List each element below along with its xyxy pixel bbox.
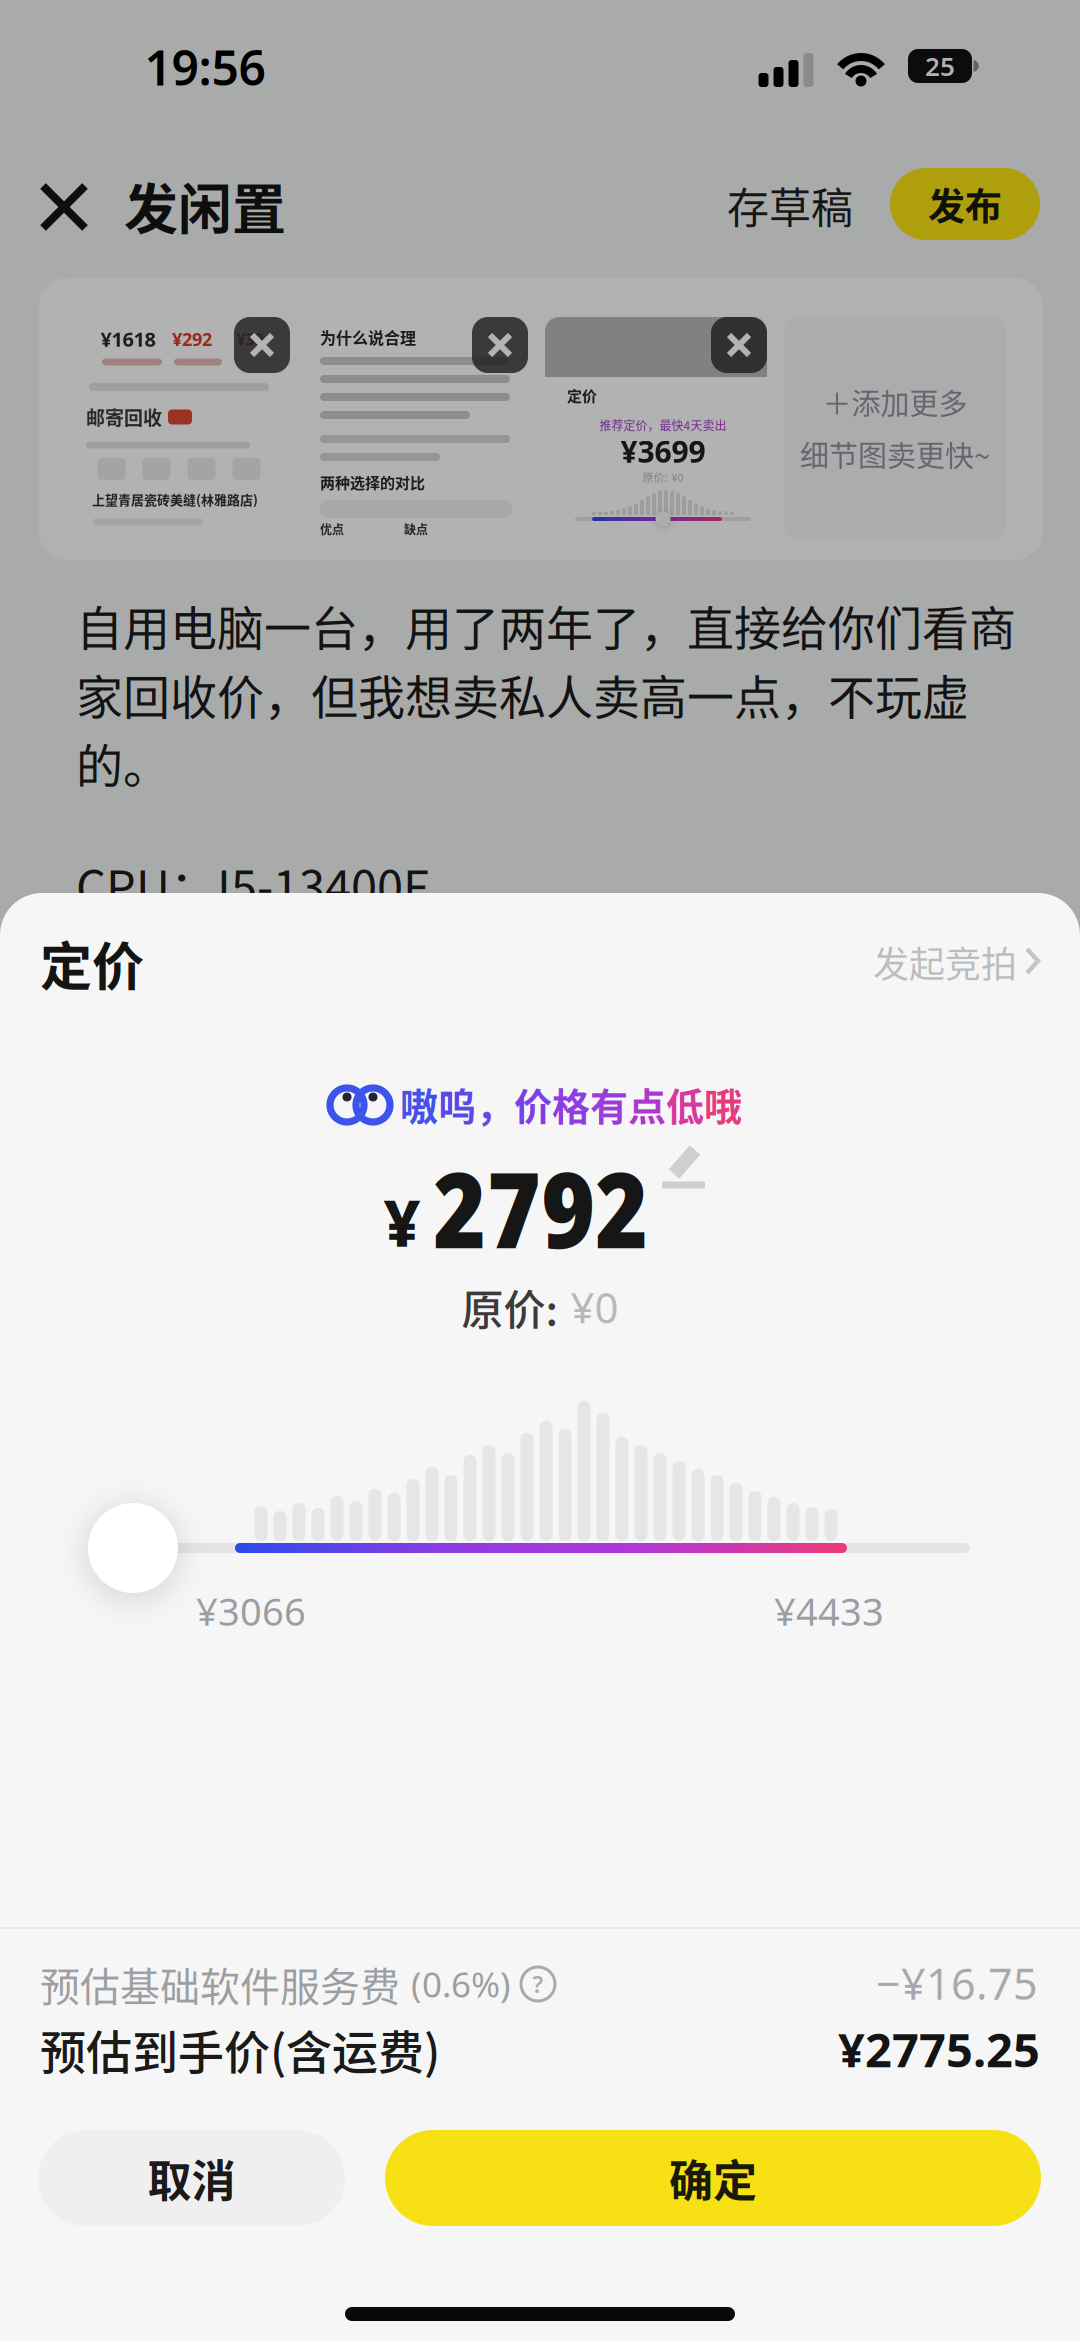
staticText: 呜 [438,1076,476,1131]
staticText: ¥4433 [774,1585,884,1637]
staticText: 家回收价，但我想卖私人卖高一点，不玩虚 [76,660,969,728]
button[interactable]: 关闭 [32,175,96,239]
staticText: CPU：I5-13400F [76,850,429,918]
button[interactable]: 删除图片 [711,317,767,373]
staticText: 缺点 [404,520,428,538]
staticText: ¥2775.25 [838,2017,1040,2081]
staticText: (0.6%) [411,1960,511,2008]
staticText: 发闲置 [124,167,286,245]
button[interactable]: 编辑价格 [661,1135,707,1189]
staticText: 取消 [147,2146,235,2210]
button[interactable]: 存草稿 [710,170,870,240]
staticText: ＋添加更多 [822,381,967,423]
staticText: 的。 [76,729,170,797]
staticText: 两种选择的对比 [320,471,425,493]
staticText: 有 [590,1076,628,1131]
staticText: 发布 [928,177,1002,231]
button[interactable]: 确定 [385,2130,1041,2226]
staticText: ¥1618 [100,325,155,353]
staticText: 定价 [40,925,144,1001]
staticText: −¥16.75 [876,1954,1038,2012]
staticText: 邮寄回收 [86,403,162,431]
staticText: 存草稿 [727,175,853,235]
button[interactable]: 服务费说明 [516,1962,560,2006]
button[interactable]: 发起竞拍 [873,936,1040,988]
staticText: 上望青居瓷砖美缝(林雅路店) [92,490,258,508]
staticText: 细节图卖更快~ [800,433,990,475]
staticText: ¥ [383,1178,420,1266]
staticText: 发起竞拍 [873,936,1017,988]
staticText: ， [476,1076,514,1131]
button[interactable]: ＋添加更多 [784,317,1006,539]
button[interactable]: 发布 [890,168,1040,240]
staticText: 嗷 [400,1076,438,1131]
staticText: ¥0 [570,1278,618,1336]
staticText: 预估到手价(含运费) [40,2016,440,2082]
staticText: ? [532,1968,543,2000]
button[interactable]: 删除图片 [472,317,528,373]
staticText: 低 [666,1076,704,1131]
button[interactable]: 取消 [38,2130,345,2226]
staticText: 25 [925,48,955,84]
staticText: 确定 [669,2146,757,2210]
staticText: 价 [514,1076,552,1131]
staticText: ¥3699 [620,431,705,471]
staticText: 原价: ¥0 [642,469,683,485]
staticText: 自用电脑一台，用了两年了，直接给你们看商 [76,591,1016,659]
button[interactable]: 删除图片 [234,317,290,373]
button[interactable]: 价格滑块 [88,1503,178,1593]
staticText: ¥292 [172,327,212,351]
staticText: 格 [552,1076,590,1131]
staticText: 19:56 [144,34,265,100]
staticText: 2792 [433,1137,649,1279]
staticText: 为什么说合理 [320,325,416,349]
staticText: 预估基础软件服务费 [40,1955,409,2013]
staticText: 推荐定价，最快4天卖出 [599,416,726,434]
staticText: 优点 [320,520,344,538]
staticText: 哦 [704,1076,742,1131]
staticText: 定价 [567,384,597,406]
staticText: 原价: [461,1277,558,1337]
staticText: ¥3066 [196,1585,306,1637]
staticText: 点 [628,1076,666,1131]
staticText: ¥30 [236,328,263,350]
